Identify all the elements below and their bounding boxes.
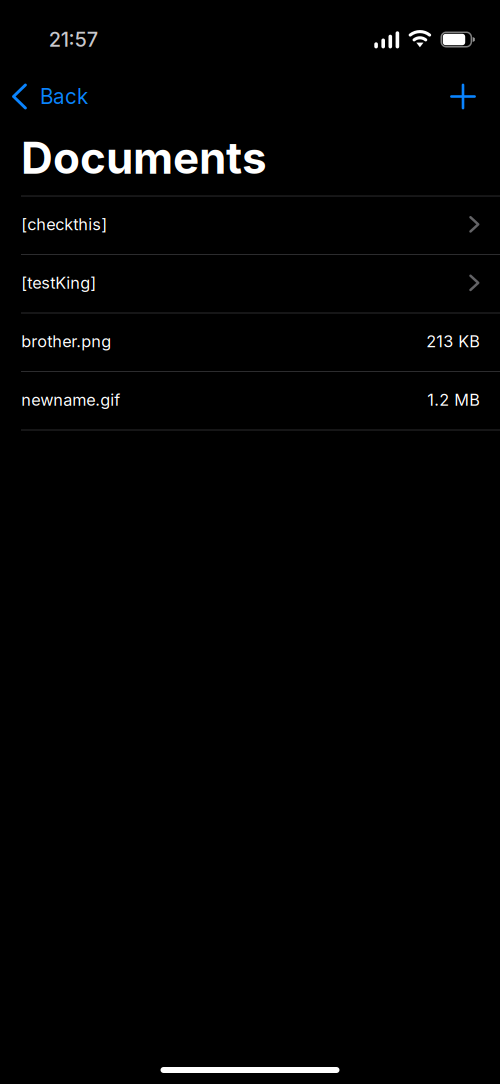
staticText: Back (40, 84, 88, 109)
button[interactable]: [checkthis] (0, 196, 500, 255)
staticText: [testKing] (21, 273, 96, 293)
staticText: brother.png (21, 332, 111, 351)
staticText: 21:57 (49, 27, 98, 52)
staticText: [checkthis] (21, 215, 107, 234)
button[interactable]: [testKing] (0, 255, 500, 313)
button[interactable]: newname.gif (0, 372, 500, 430)
button[interactable]: Add (436, 79, 500, 114)
button[interactable]: brother.png (0, 313, 500, 372)
staticText: 1.2 MB (427, 390, 480, 410)
staticText: newname.gif (21, 390, 120, 410)
staticText: 213 KB (426, 332, 480, 351)
staticText: Documents (21, 131, 267, 184)
button[interactable]: Back (0, 79, 100, 114)
